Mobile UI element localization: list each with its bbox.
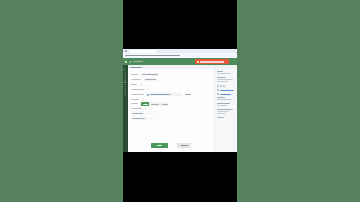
button[interactable]: Tool <box>223 85 225 87</box>
button[interactable] <box>151 143 168 148</box>
button[interactable] <box>131 111 159 115</box>
button[interactable] <box>146 93 182 96</box>
button[interactable] <box>195 59 229 64</box>
button[interactable]: Menu <box>123 49 237 152</box>
button[interactable] <box>141 73 159 76</box>
button[interactable]: Tool <box>217 85 219 87</box>
button[interactable] <box>149 102 160 106</box>
button[interactable] <box>144 78 157 81</box>
button[interactable] <box>217 89 234 91</box>
button[interactable] <box>131 116 159 120</box>
button[interactable] <box>217 93 231 95</box>
button[interactable]: Tool <box>220 85 222 87</box>
button[interactable] <box>141 102 149 106</box>
button[interactable] <box>160 102 169 106</box>
button[interactable] <box>177 143 191 148</box>
